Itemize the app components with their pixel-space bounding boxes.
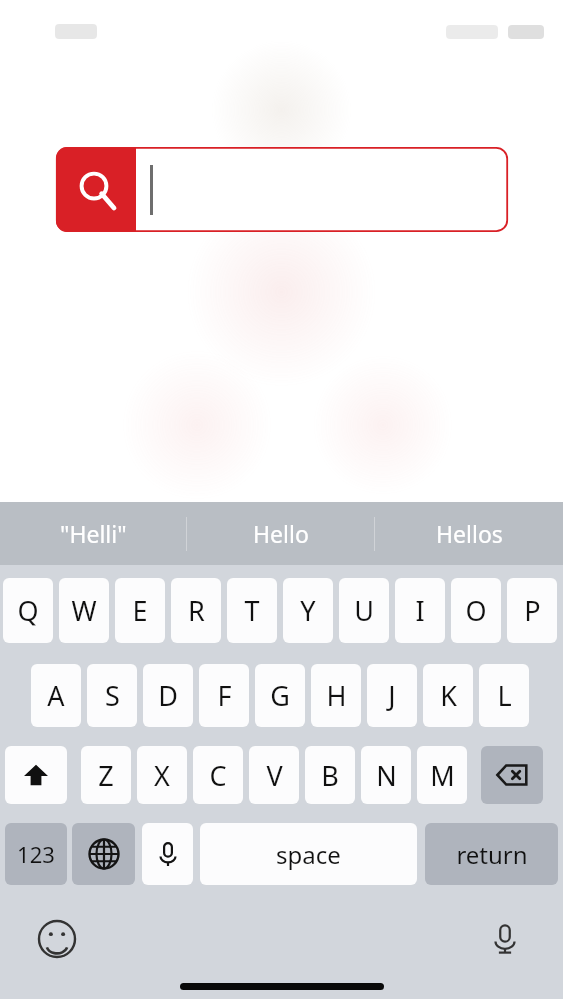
staticText: space xyxy=(276,838,341,871)
staticText: 123 xyxy=(17,839,55,869)
button[interactable]: K xyxy=(423,664,473,727)
button[interactable]: V xyxy=(249,746,299,804)
button[interactable]: Search xyxy=(56,147,508,232)
staticText: W xyxy=(71,592,97,629)
staticText: M xyxy=(430,757,455,794)
staticText: P xyxy=(524,592,541,629)
staticText: return xyxy=(456,838,528,871)
button[interactable]: space xyxy=(200,823,417,885)
staticText: H xyxy=(326,677,347,714)
staticText: A xyxy=(47,677,65,714)
button[interactable]: O xyxy=(451,578,501,643)
button[interactable]: L xyxy=(479,664,529,727)
button[interactable]: Dictate xyxy=(142,823,193,885)
button[interactable]: Q xyxy=(3,578,53,643)
button[interactable]: return xyxy=(425,823,558,885)
button[interactable]: E xyxy=(115,578,165,643)
button[interactable]: C xyxy=(193,746,243,804)
button[interactable]: T xyxy=(227,578,277,643)
button[interactable]: N xyxy=(361,746,411,804)
staticText: T xyxy=(244,592,260,629)
button[interactable]: B xyxy=(305,746,355,804)
staticText: Y xyxy=(300,592,316,629)
button[interactable]: R xyxy=(171,578,221,643)
button[interactable]: W xyxy=(59,578,109,643)
button[interactable]: S xyxy=(87,664,137,727)
staticText: D xyxy=(158,677,178,714)
staticText: O xyxy=(465,592,487,629)
button[interactable]: P xyxy=(507,578,557,643)
button[interactable]: Hello xyxy=(187,502,375,565)
button[interactable]: Hellos xyxy=(375,502,563,565)
button[interactable]: Z xyxy=(81,746,131,804)
button[interactable]: Next keyboard xyxy=(72,823,135,885)
button[interactable]: I xyxy=(395,578,445,643)
button[interactable]: A xyxy=(31,664,81,727)
button[interactable]: F xyxy=(199,664,249,727)
button[interactable]: G xyxy=(255,664,305,727)
staticText: Hello xyxy=(253,518,309,549)
button[interactable]: Y xyxy=(283,578,333,643)
staticText: V xyxy=(266,757,283,794)
staticText: L xyxy=(497,677,512,714)
button[interactable]: Shift xyxy=(5,746,67,804)
staticText: B xyxy=(321,757,339,794)
button[interactable]: X xyxy=(137,746,187,804)
staticText: G xyxy=(270,677,290,714)
staticText: J xyxy=(388,677,396,714)
staticText: F xyxy=(217,677,232,714)
button[interactable]: 123 xyxy=(5,823,67,885)
staticText: S xyxy=(105,677,120,714)
staticText: N xyxy=(376,757,397,794)
button[interactable]: Backspace xyxy=(481,746,543,804)
staticText: C xyxy=(209,757,227,794)
button[interactable]: "Helli" xyxy=(0,502,187,565)
button[interactable]: J xyxy=(367,664,417,727)
staticText: Q xyxy=(17,592,39,629)
staticText: E xyxy=(132,592,148,629)
staticText: Z xyxy=(98,757,114,794)
staticText: I xyxy=(415,592,425,629)
staticText: X xyxy=(154,757,170,794)
button[interactable]: H xyxy=(311,664,361,727)
staticText: R xyxy=(188,592,205,629)
staticText: K xyxy=(440,677,457,714)
button[interactable]: D xyxy=(143,664,193,727)
button[interactable]: Dictation xyxy=(479,913,531,965)
staticText: U xyxy=(354,592,374,629)
button[interactable]: U xyxy=(339,578,389,643)
staticText: Hellos xyxy=(436,518,503,549)
button[interactable]: M xyxy=(417,746,467,804)
button[interactable]: Emoji xyxy=(31,913,83,965)
button[interactable]: Search xyxy=(56,147,136,232)
staticText: "Helli" xyxy=(60,518,127,549)
